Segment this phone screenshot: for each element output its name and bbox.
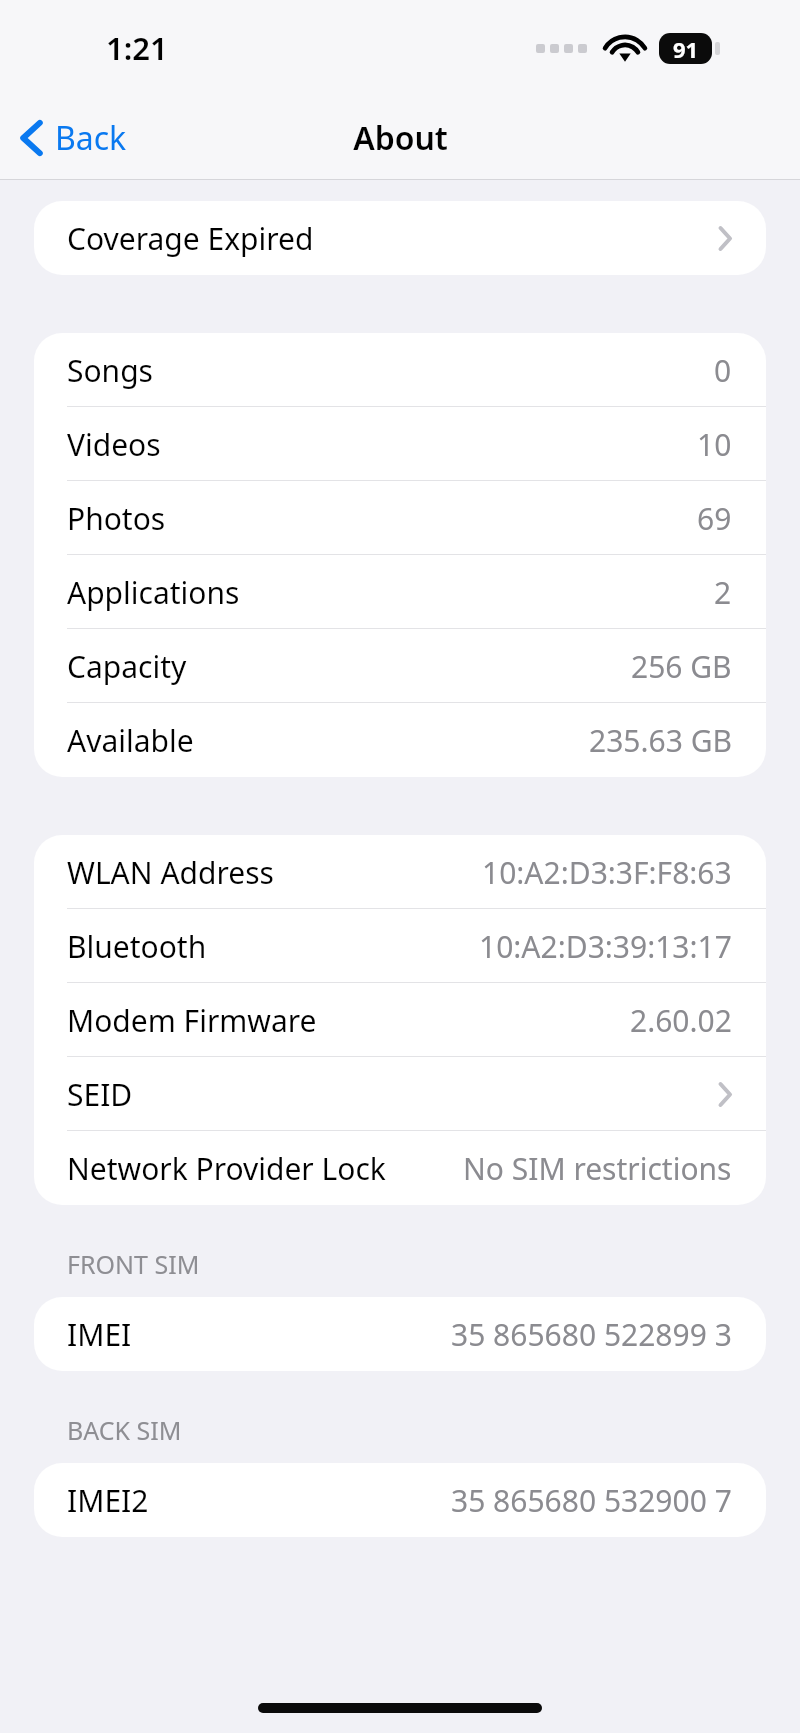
button[interactable]: Photos xyxy=(34,481,766,555)
staticText: 10:A2:D3:3F:F8:63 xyxy=(482,852,732,893)
button[interactable]: Bluetooth xyxy=(34,909,766,983)
staticText: 235.63 GB xyxy=(589,720,732,761)
staticText: 2 xyxy=(714,572,732,613)
staticText: 35 865680 532900 7 xyxy=(451,1480,732,1521)
staticText: SEID xyxy=(67,1074,133,1115)
staticText: Songs xyxy=(67,350,153,391)
staticText: 10:A2:D3:39:13:17 xyxy=(479,926,732,967)
button[interactable]: Back xyxy=(0,108,143,168)
button[interactable]: Available xyxy=(34,703,766,777)
button[interactable]: Coverage Expired xyxy=(34,201,766,275)
button[interactable]: Network Provider Lock xyxy=(34,1131,766,1205)
staticText: BACK SIM xyxy=(67,1413,182,1447)
button[interactable]: IMEI2 xyxy=(34,1463,766,1537)
staticText: 10 xyxy=(697,424,732,465)
staticText: 91 xyxy=(673,34,699,64)
staticText: FRONT SIM xyxy=(67,1247,200,1281)
staticText: Photos xyxy=(67,498,166,539)
staticText: IMEI2 xyxy=(67,1480,149,1521)
staticText: Applications xyxy=(67,572,240,613)
staticText: Coverage Expired xyxy=(67,218,314,259)
staticText: Videos xyxy=(67,424,161,465)
button[interactable]: Capacity xyxy=(34,629,766,703)
staticText: Back xyxy=(55,116,127,160)
button[interactable]: Videos xyxy=(34,407,766,481)
staticText: No SIM restrictions xyxy=(463,1148,732,1189)
other: Back xyxy=(20,120,43,156)
staticText: 2.60.02 xyxy=(630,1000,732,1041)
button[interactable]: Applications xyxy=(34,555,766,629)
staticText: 69 xyxy=(697,498,732,539)
staticText: Network Provider Lock xyxy=(67,1148,386,1189)
staticText: About xyxy=(353,116,448,160)
staticText: 256 GB xyxy=(631,646,732,687)
staticText: 1:21 xyxy=(106,27,168,69)
staticText: 35 865680 522899 3 xyxy=(451,1314,732,1355)
button[interactable]: IMEI xyxy=(34,1297,766,1371)
staticText: Available xyxy=(67,720,194,761)
staticText: WLAN Address xyxy=(67,852,274,893)
staticText: IMEI xyxy=(67,1314,132,1355)
staticText: Modem Firmware xyxy=(67,1000,317,1041)
button[interactable]: Songs xyxy=(34,333,766,407)
button[interactable]: WLAN Address xyxy=(34,835,766,909)
staticText: Bluetooth xyxy=(67,926,207,967)
staticText: Capacity xyxy=(67,646,187,687)
staticText: 0 xyxy=(714,350,732,391)
button[interactable]: SEID xyxy=(34,1057,766,1131)
button[interactable]: Modem Firmware xyxy=(34,983,766,1057)
